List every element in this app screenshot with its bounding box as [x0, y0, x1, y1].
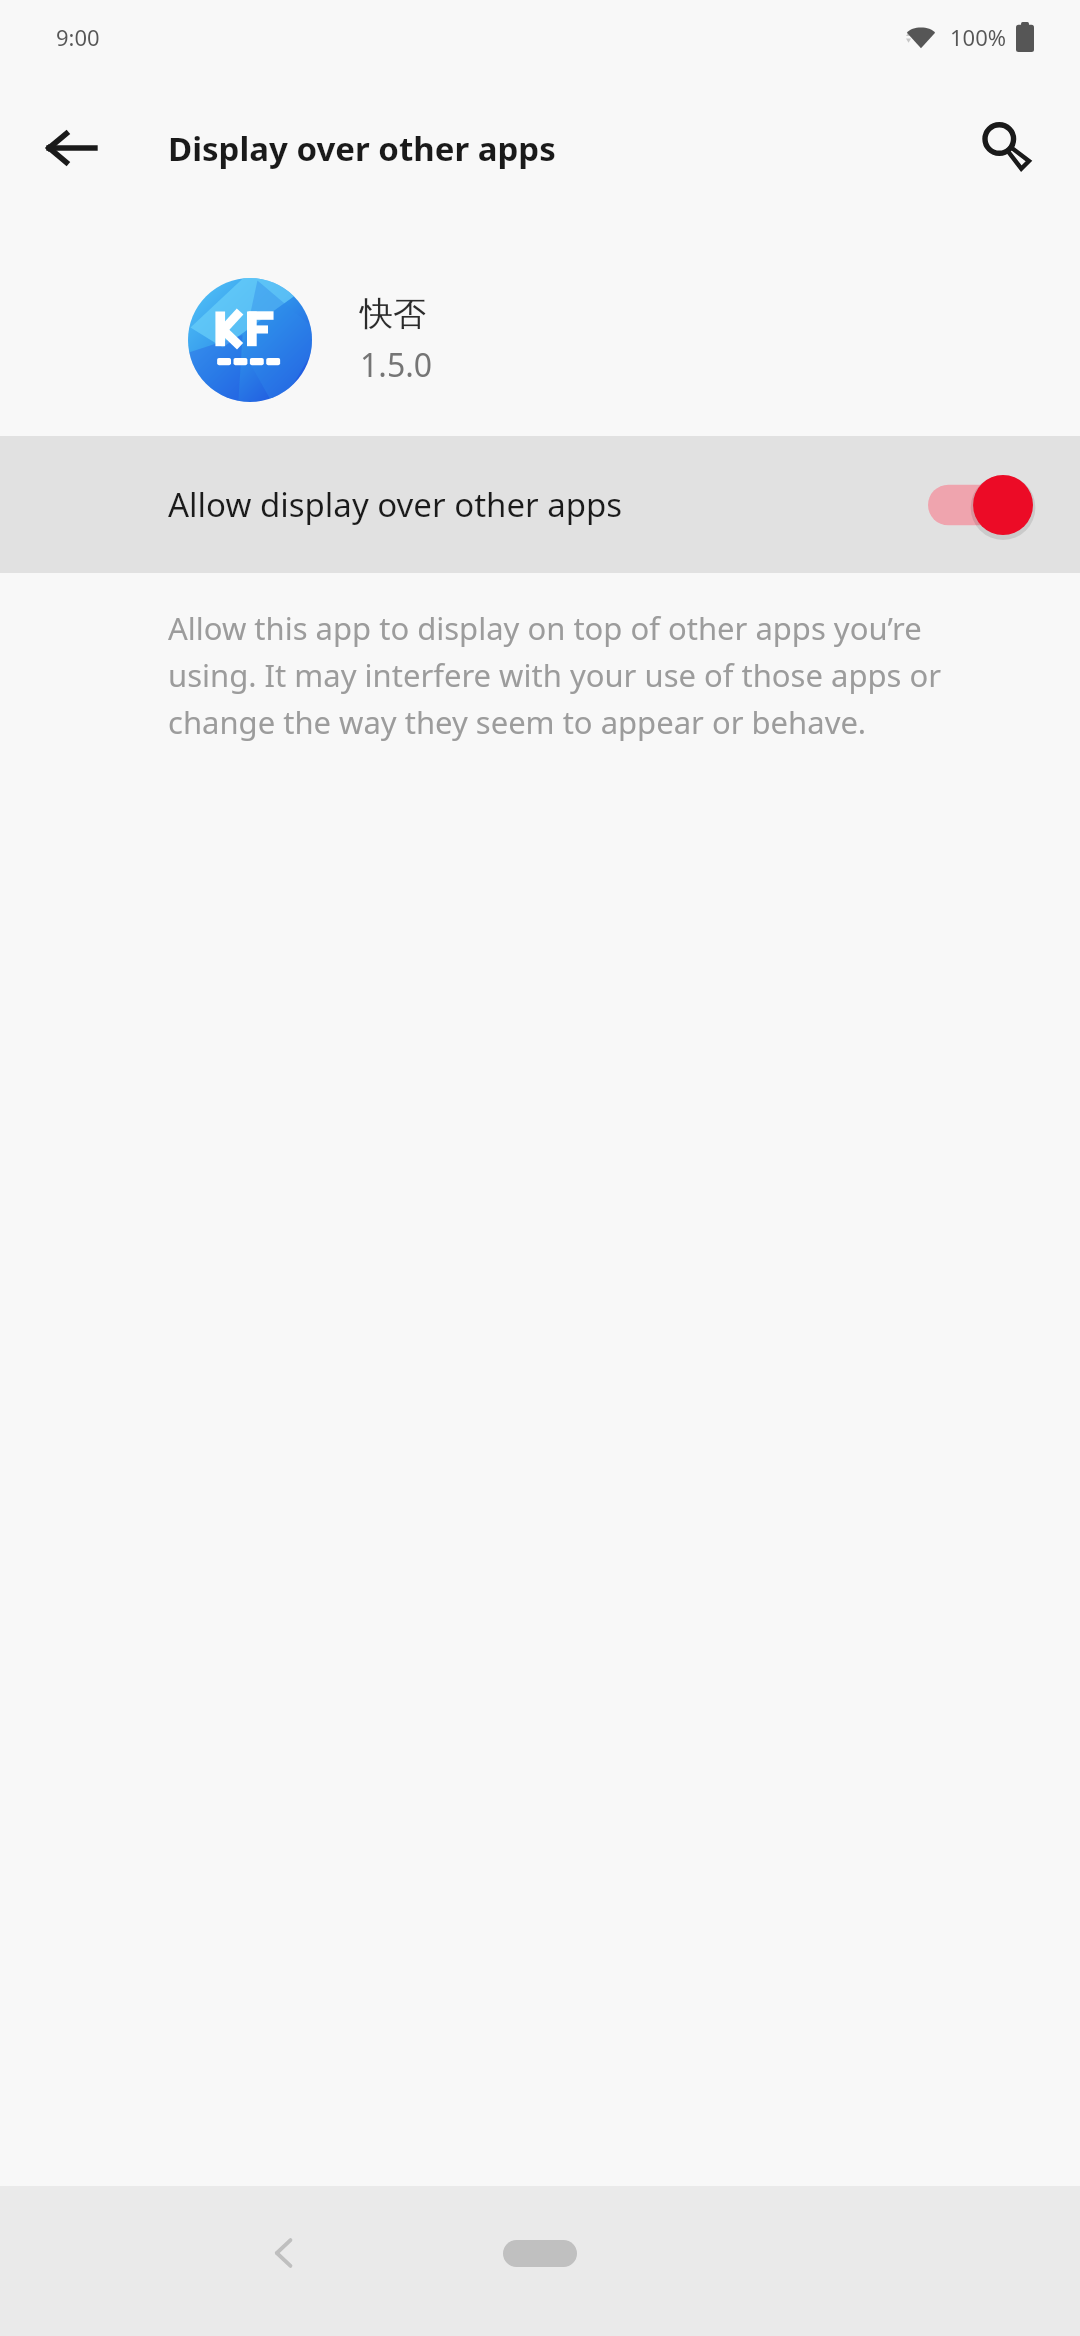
staticText: 9:00	[56, 22, 100, 52]
other: Allow display over other apps	[928, 468, 1034, 542]
button[interactable]: Allow display over other apps	[0, 436, 1080, 573]
staticText: 1.5.0	[360, 343, 433, 387]
staticText: 100%	[950, 22, 1007, 52]
staticText: 快否	[360, 293, 426, 335]
staticText: Allow display over other apps	[168, 482, 928, 527]
button[interactable]: Back	[242, 2211, 326, 2295]
button[interactable]: Back	[34, 110, 110, 186]
button[interactable]: Home	[481, 2224, 599, 2282]
staticText: Allow this app to display on top of othe…	[168, 607, 1000, 743]
staticText: Display over other apps	[168, 126, 556, 171]
button[interactable]: Search	[964, 106, 1048, 190]
